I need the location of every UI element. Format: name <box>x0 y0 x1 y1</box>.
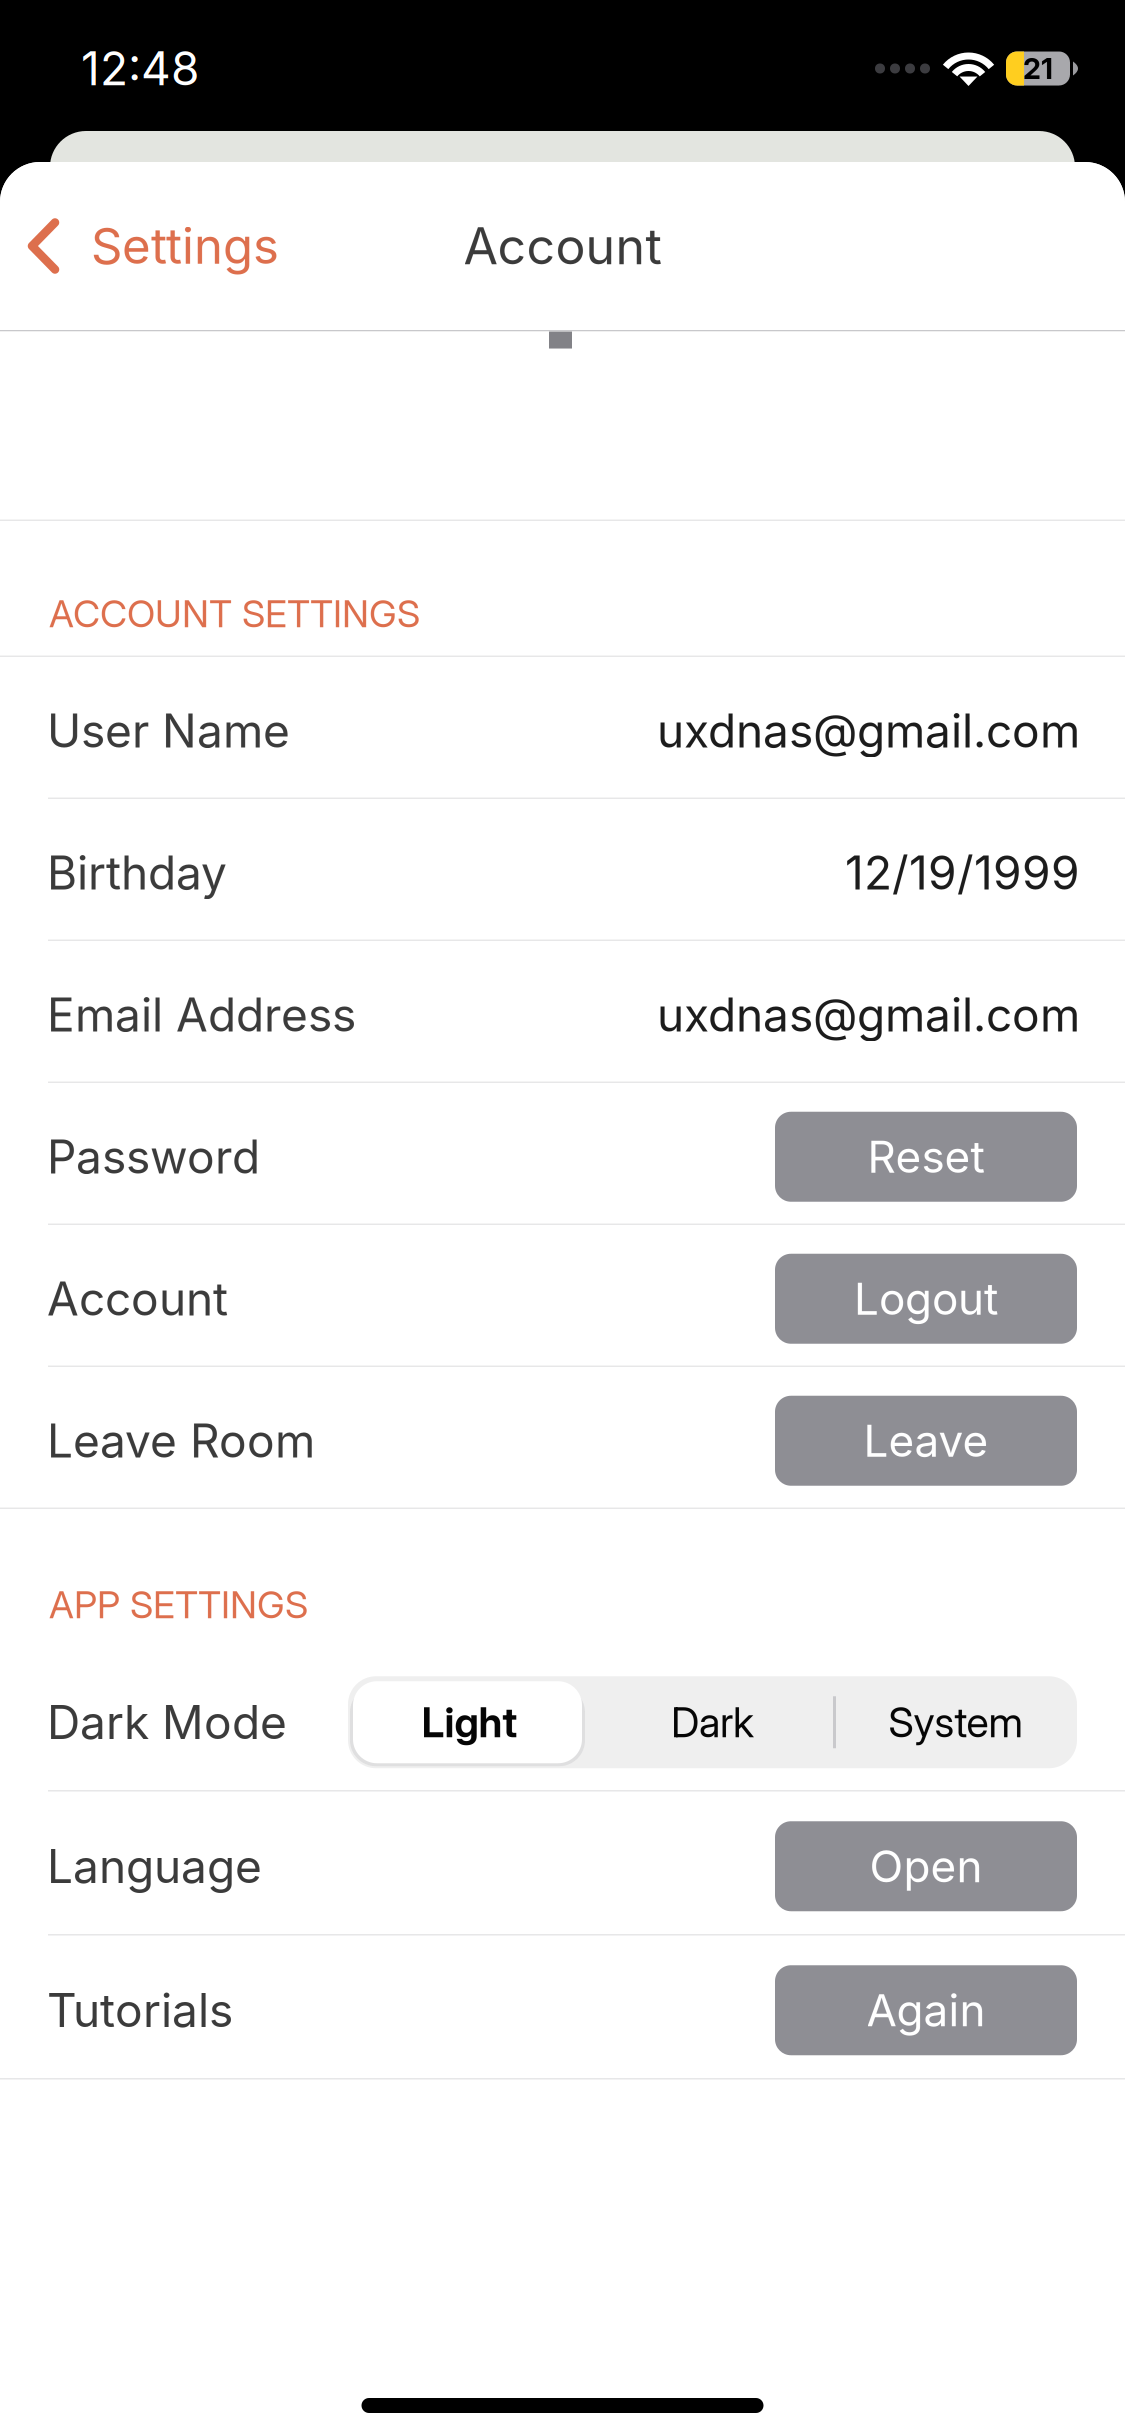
staticText: Language <box>47 1838 262 1894</box>
staticText: Account <box>47 1271 228 1327</box>
button[interactable]: Logout <box>775 1254 1077 1344</box>
staticText: Dark <box>671 1697 754 1747</box>
button[interactable]: Email Address <box>0 941 1125 1081</box>
staticText: Password <box>47 1129 260 1185</box>
staticText: Tutorials <box>47 1982 233 2038</box>
button[interactable]: Again <box>775 1965 1077 2055</box>
staticText: uxdnas@gmail.com <box>657 703 1080 759</box>
staticText: Logout <box>854 1272 998 1325</box>
staticText: Light <box>421 1697 517 1747</box>
staticText: Leave <box>863 1414 988 1467</box>
staticText: Dark Mode <box>47 1694 287 1750</box>
button[interactable]: Dark <box>591 1676 834 1768</box>
staticText: Settings <box>91 216 279 276</box>
staticText: 12:48 <box>81 41 199 96</box>
button[interactable]: Open <box>775 1821 1077 1911</box>
staticText: 21 <box>1023 51 1053 86</box>
staticText: Open <box>869 1840 982 1893</box>
staticText: Again <box>866 1984 985 2037</box>
button[interactable]: System <box>834 1676 1077 1768</box>
staticText: Account <box>463 216 661 276</box>
staticText: Birthday <box>47 845 227 901</box>
staticText: Email Address <box>47 987 356 1043</box>
staticText: Reset <box>867 1130 984 1183</box>
staticText: User Name <box>47 703 290 759</box>
button[interactable]: User Name <box>0 657 1125 797</box>
staticText: APP SETTINGS <box>49 1582 308 1627</box>
staticText: uxdnas@gmail.com <box>657 987 1080 1043</box>
button[interactable]: Leave <box>775 1396 1077 1486</box>
button[interactable]: Light <box>348 1676 591 1768</box>
staticText: 12/19/1999 <box>845 845 1080 901</box>
staticText: Leave Room <box>47 1413 315 1469</box>
staticText: System <box>888 1697 1022 1747</box>
button[interactable]: Settings <box>0 162 305 330</box>
button[interactable]: Birthday <box>0 799 1125 939</box>
staticText: ACCOUNT SETTINGS <box>49 591 420 636</box>
button[interactable]: Reset <box>775 1112 1077 1202</box>
